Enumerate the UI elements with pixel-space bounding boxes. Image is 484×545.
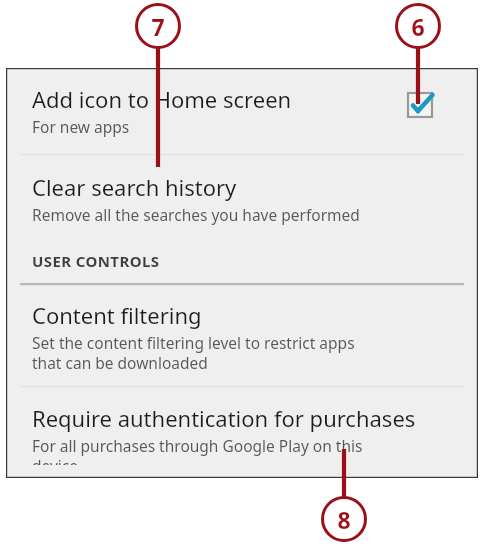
button[interactable]: Add icon to Home screen (6, 68, 478, 154)
staticText: For new apps (32, 116, 130, 137)
staticText: Add icon to Home screen (32, 84, 292, 114)
button[interactable]: Add icon to Home screen checkbox, checke… (405, 90, 435, 120)
staticText: USER CONTROLS (32, 251, 160, 271)
staticText: Content filtering (32, 300, 202, 330)
staticText: 6 (411, 11, 425, 42)
button[interactable]: Content filtering (6, 286, 478, 386)
staticText: 7 (151, 11, 165, 42)
staticText: Set the content filtering level to restr… (32, 332, 355, 373)
staticText: Remove all the searches you have perform… (32, 204, 360, 225)
button[interactable]: Require authentication for purchases (6, 389, 478, 478)
button[interactable]: Clear search history (6, 157, 478, 239)
other: Callout 8 (321, 496, 367, 542)
staticText: Require authentication for purchases (32, 403, 416, 433)
other: Callout 7 (135, 3, 181, 49)
staticText: 8 (337, 504, 351, 535)
staticText: For all purchases through Google Play on… (32, 435, 363, 465)
staticText: Clear search history (32, 172, 237, 202)
other: Callout 6 (395, 3, 441, 49)
